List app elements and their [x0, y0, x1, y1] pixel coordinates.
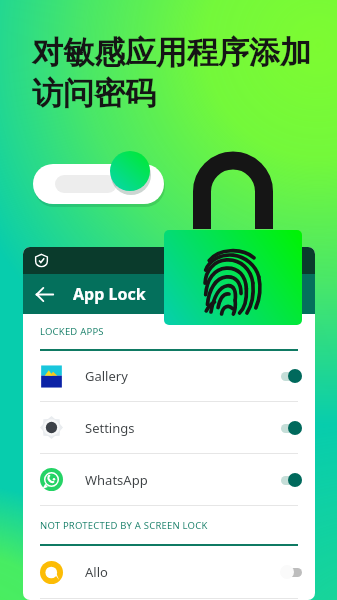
staticText: WhatsApp: [85, 471, 148, 489]
button[interactable]: [280, 470, 302, 490]
button[interactable]: Gallery: [23, 351, 315, 401]
button[interactable]: Allo: [23, 546, 315, 598]
staticText: 对敏感应用程序添加 访问密码: [32, 33, 311, 113]
button[interactable]: Settings: [23, 402, 315, 453]
staticText: Settings: [85, 419, 135, 437]
button[interactable]: WhatsApp: [23, 454, 315, 505]
button[interactable]: [280, 562, 302, 582]
button[interactable]: [33, 164, 164, 204]
staticText: LOCKED APPS: [40, 325, 104, 338]
staticText: Gallery: [85, 367, 128, 385]
button[interactable]: [280, 366, 302, 386]
button[interactable]: [280, 418, 302, 438]
staticText: NOT PROTECTED BY A SCREEN LOCK: [40, 519, 208, 532]
staticText: Allo: [85, 563, 108, 581]
staticText: App Lock: [73, 283, 146, 305]
button[interactable]: Back: [28, 278, 60, 310]
